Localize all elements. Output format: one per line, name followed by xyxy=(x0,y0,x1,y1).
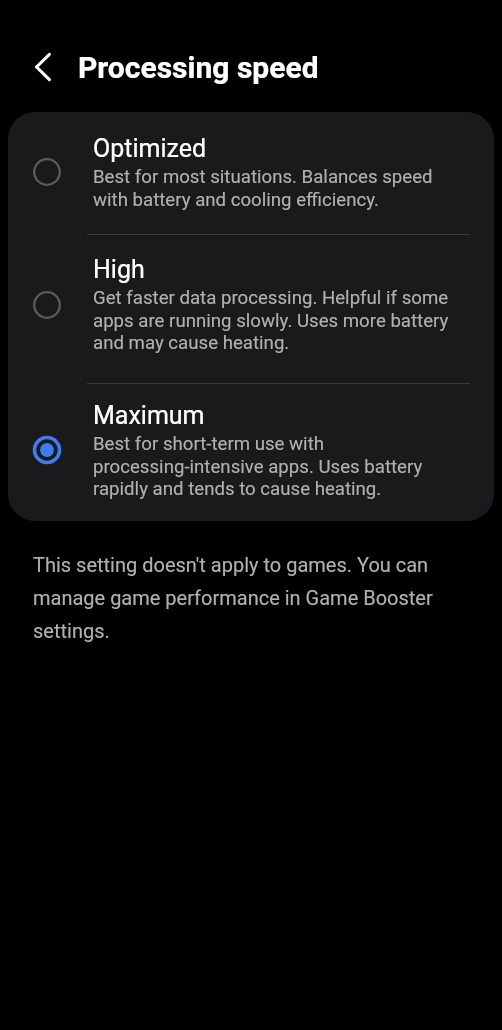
button[interactable]: Back xyxy=(19,43,67,91)
staticText: Maximum xyxy=(93,401,205,430)
staticText: Processing speed xyxy=(78,50,319,85)
staticText: This setting doesn't apply to games. You… xyxy=(33,553,443,645)
staticText: Best for most situations. Balances speed… xyxy=(93,166,459,210)
button[interactable]: Maximum xyxy=(8,384,494,521)
staticText: Get faster data processing. Helpful if s… xyxy=(93,287,459,353)
staticText: Optimized xyxy=(93,134,207,163)
button[interactable]: Optimized xyxy=(8,112,494,234)
staticText: Best for short-term use with processing‑… xyxy=(93,433,459,499)
staticText: High xyxy=(93,255,145,284)
button[interactable]: High xyxy=(8,235,494,383)
